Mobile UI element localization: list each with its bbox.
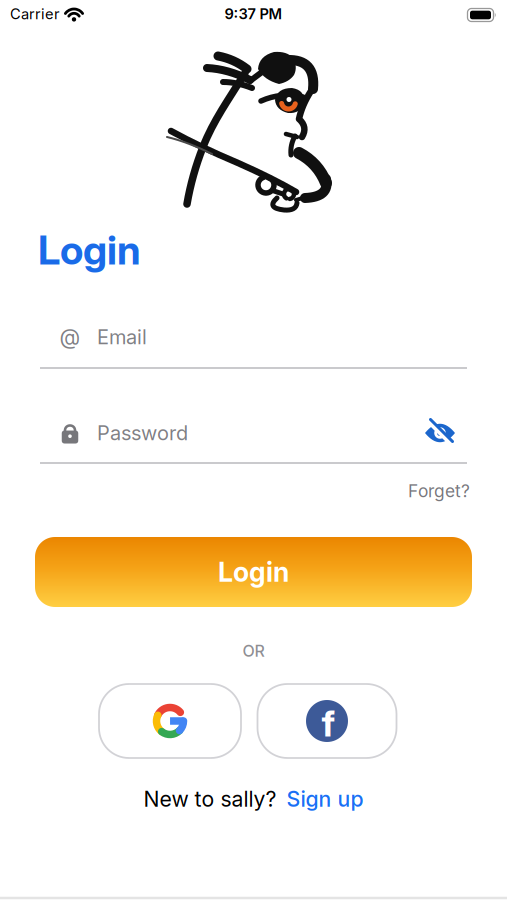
staticText: 9:37 PM [224, 5, 282, 23]
button[interactable]: Forget? [408, 481, 470, 501]
staticText: Forget? [408, 481, 470, 501]
button[interactable] [99, 684, 241, 758]
staticText: Password [97, 421, 188, 445]
staticText: New to sally? [143, 786, 276, 812]
staticText: Carrier [10, 5, 60, 23]
button[interactable]: Sign up [286, 786, 363, 812]
staticText: Email [97, 325, 147, 349]
button[interactable]: f [257, 684, 396, 758]
button[interactable] [425, 421, 455, 445]
staticText: @ [59, 324, 80, 350]
staticText: f [321, 702, 335, 745]
staticText: OR [242, 642, 264, 660]
button[interactable]: Login [35, 537, 472, 607]
staticText: Login [218, 556, 289, 588]
staticText: Sign up [286, 786, 363, 812]
staticText: Login [38, 226, 141, 274]
